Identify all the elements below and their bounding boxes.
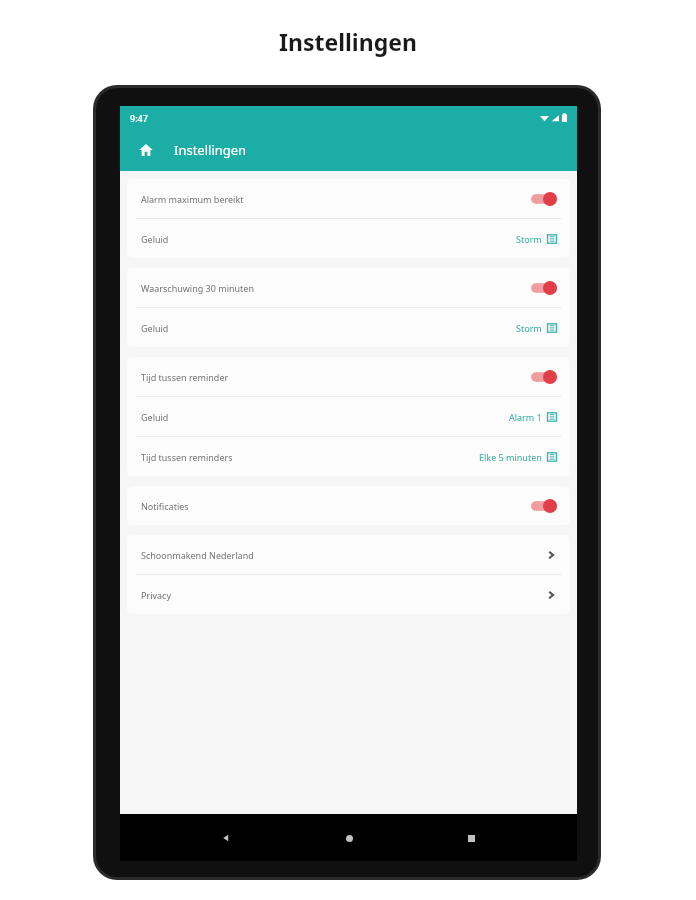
button[interactable]: Geluid (127, 308, 570, 347)
button[interactable]: Choose (547, 234, 557, 244)
button[interactable]: Home (133, 137, 159, 163)
button[interactable]: Open (546, 548, 556, 562)
button[interactable]: Back (209, 821, 243, 855)
button[interactable]: Notificaties (127, 486, 570, 525)
staticText: Geluid (141, 233, 169, 245)
button[interactable]: Recent apps (454, 821, 488, 855)
button[interactable]: Open (546, 588, 556, 602)
button[interactable]: Alarm maximum bereikt (127, 179, 570, 218)
staticText: Privacy (141, 589, 172, 601)
staticText: Geluid (141, 411, 169, 423)
button[interactable]: Waarschuwing 30 minuten (127, 268, 570, 307)
staticText: Tijd tussen reminders (141, 451, 233, 463)
button[interactable]: Choose (547, 323, 557, 333)
staticText: Instellingen (279, 26, 417, 57)
button[interactable]: Tijd tussen reminder (127, 357, 570, 396)
staticText: Elke 5 minuten (479, 451, 542, 463)
staticText: Tijd tussen reminder (141, 371, 229, 383)
staticText: Notificaties (141, 500, 189, 512)
staticText: Instellingen (174, 141, 247, 159)
staticText: Storm (516, 233, 542, 245)
staticText: 9:47 (130, 112, 148, 124)
button[interactable]: Choose (547, 452, 557, 462)
staticText: Geluid (141, 322, 169, 334)
button[interactable]: Schoonmakend Nederland (127, 535, 570, 574)
button[interactable]: Choose (547, 412, 557, 422)
button[interactable]: Geluid (127, 219, 570, 258)
staticText: Schoonmakend Nederland (141, 549, 254, 561)
button[interactable]: Geluid (127, 397, 570, 436)
staticText: Storm (516, 322, 542, 334)
button[interactable]: Home (332, 821, 366, 855)
staticText: Alarm maximum bereikt (141, 193, 244, 205)
staticText: Alarm 1 (509, 411, 542, 423)
staticText: Waarschuwing 30 minuten (141, 282, 254, 294)
button[interactable]: Tijd tussen reminders (127, 437, 570, 476)
button[interactable]: Privacy (127, 575, 570, 614)
